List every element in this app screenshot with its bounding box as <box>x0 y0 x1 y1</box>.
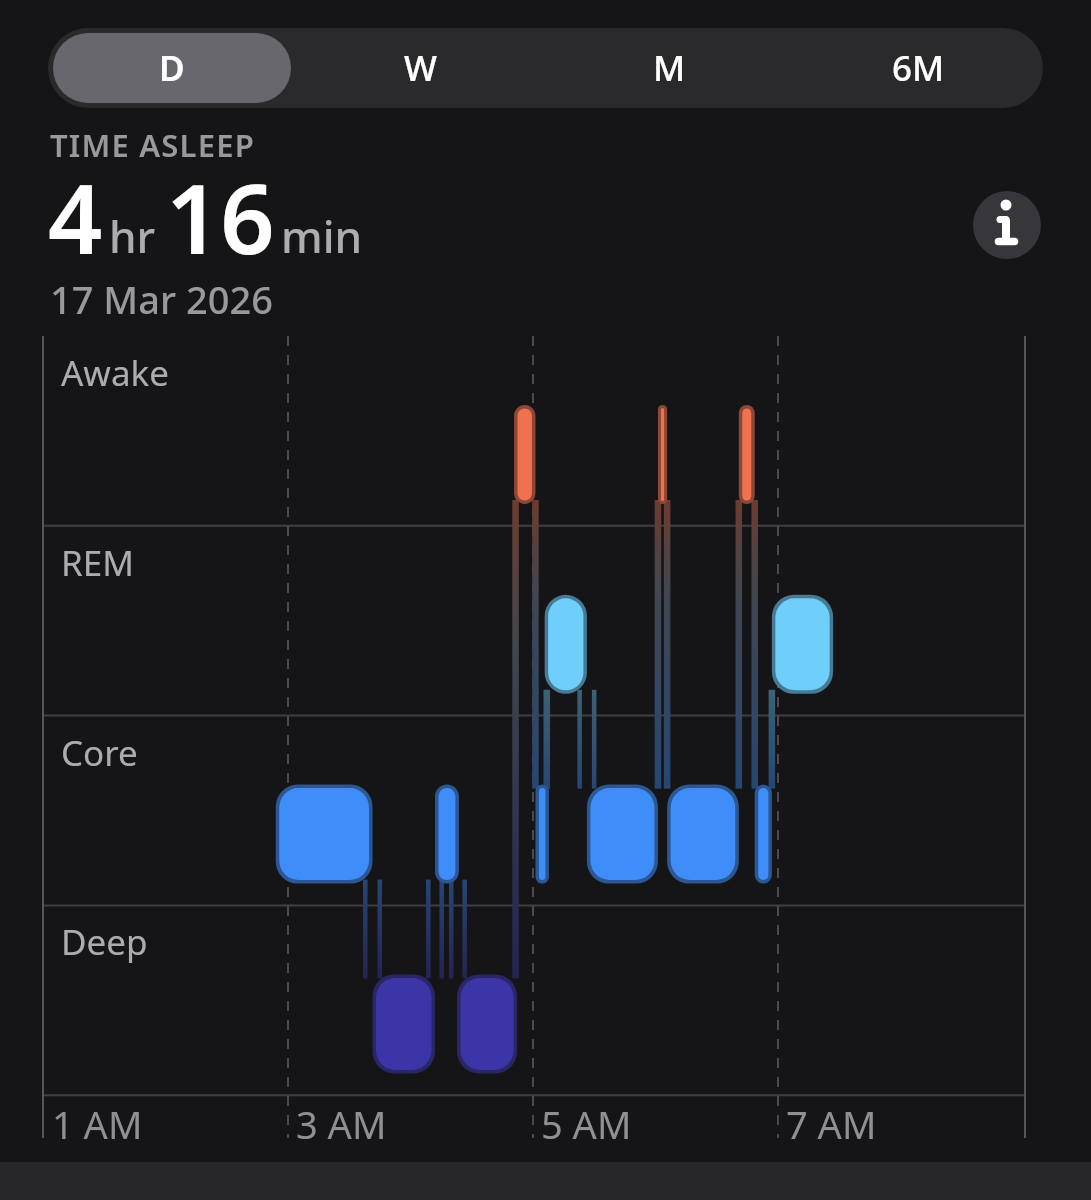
staticText: 6M <box>892 44 945 92</box>
staticText: Deep <box>61 918 148 966</box>
button[interactable]: 6M <box>794 28 1043 108</box>
staticText: Core <box>61 729 138 777</box>
staticText: TIME ASLEEP <box>50 124 255 166</box>
staticText: 1 AM <box>52 1098 143 1150</box>
staticText: 17 Mar 2026 <box>50 273 273 325</box>
button[interactable]: W <box>296 28 545 108</box>
staticText: min <box>281 206 363 266</box>
staticText: 4 <box>48 152 103 281</box>
button[interactable]: M <box>545 28 794 108</box>
staticText: Awake <box>61 349 169 397</box>
staticText: D <box>159 44 185 92</box>
staticText: 5 AM <box>541 1098 632 1150</box>
button[interactable] <box>973 191 1041 259</box>
staticText: M <box>653 44 686 92</box>
staticText: 3 AM <box>296 1098 387 1150</box>
staticText: W <box>404 44 437 92</box>
staticText: 16 <box>166 152 275 281</box>
button[interactable]: D <box>48 28 296 108</box>
staticText: hr <box>109 206 156 266</box>
staticText: 7 AM <box>786 1098 877 1150</box>
staticText: REM <box>61 539 134 587</box>
